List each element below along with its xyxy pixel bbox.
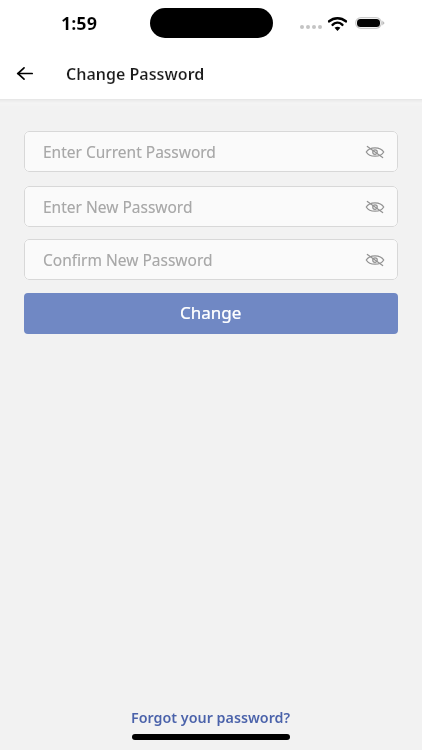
staticText: Forgot your password? xyxy=(131,708,291,727)
staticText: 1:59 xyxy=(61,11,97,36)
button[interactable]: Back xyxy=(8,56,42,90)
staticText: Change xyxy=(180,301,242,324)
button[interactable]: Confirm New Password xyxy=(24,239,398,280)
staticText: Enter New Password xyxy=(43,196,193,217)
button[interactable]: Show password xyxy=(363,140,387,164)
staticText: Confirm New Password xyxy=(43,249,213,270)
button[interactable]: Change xyxy=(24,293,398,334)
button[interactable]: Show password xyxy=(363,248,387,272)
button[interactable]: Enter Current Password xyxy=(24,131,398,172)
button[interactable]: Enter New Password xyxy=(24,186,398,227)
staticText: Change Password xyxy=(66,63,205,85)
button[interactable]: Forgot your password? xyxy=(123,706,299,729)
button[interactable]: Show password xyxy=(363,195,387,219)
staticText: Enter Current Password xyxy=(43,141,216,162)
